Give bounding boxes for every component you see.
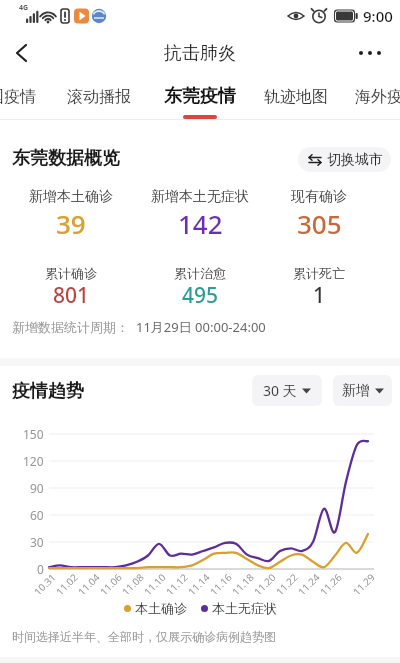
staticText: 新增本土确诊: [29, 188, 113, 204]
button[interactable]: 滚动播报: [64, 82, 134, 112]
staticText: 累计确诊: [45, 265, 97, 281]
staticText: 11.29: [350, 570, 376, 596]
staticText: 本土确诊: [135, 600, 187, 616]
staticText: 142: [178, 206, 223, 234]
button[interactable]: [4, 32, 44, 74]
staticText: 东莞疫情: [164, 85, 236, 108]
staticText: 11.16: [207, 570, 233, 596]
staticText: 本土无症状: [212, 600, 277, 616]
button[interactable]: [350, 32, 394, 74]
staticText: 11.06: [97, 570, 123, 596]
staticText: 4G: [19, 3, 29, 13]
staticText: 9:00: [363, 6, 393, 26]
staticText: 累计治愈: [174, 265, 226, 281]
staticText: 国疫情: [0, 87, 36, 107]
staticText: 时间选择近半年、全部时，仅展示确诊病例趋势图: [12, 629, 276, 644]
staticText: 11.20: [251, 570, 277, 596]
staticText: 抗击肺炎: [164, 42, 236, 65]
button[interactable]: 切换城市: [298, 147, 391, 172]
staticText: 11月29日 00:00-24:00: [136, 318, 266, 335]
staticText: 滚动播报: [67, 87, 131, 107]
button[interactable]: 新增: [333, 375, 392, 406]
staticText: 11.22: [273, 570, 299, 596]
staticText: 120: [23, 453, 44, 469]
staticText: 疫情趋势: [12, 380, 84, 403]
staticText: 39: [56, 206, 86, 234]
staticText: 11.12: [163, 570, 189, 596]
staticText: 495: [182, 281, 219, 303]
staticText: 海外疫情: [355, 87, 400, 107]
button[interactable]: 国疫情: [0, 82, 38, 112]
staticText: 现有确诊: [291, 188, 347, 204]
staticText: 10.31: [31, 570, 57, 596]
staticText: 30 天: [263, 381, 297, 400]
staticText: 305: [297, 206, 342, 234]
staticText: 新增: [342, 382, 370, 400]
button[interactable]: 东莞疫情: [158, 80, 242, 112]
staticText: 0: [37, 561, 44, 577]
staticText: 切换城市: [327, 151, 383, 169]
staticText: 轨迹地图: [264, 87, 328, 107]
button[interactable]: 海外疫情: [355, 82, 400, 112]
staticText: 30: [30, 534, 44, 550]
staticText: 801: [53, 281, 90, 303]
staticText: 东莞数据概览: [12, 147, 120, 170]
staticText: 90: [30, 480, 44, 496]
staticText: 11.08: [119, 570, 145, 596]
staticText: 11.24: [295, 570, 321, 596]
staticText: 60: [30, 507, 44, 523]
staticText: 11.10: [141, 570, 167, 596]
staticText: 150: [23, 426, 44, 442]
staticText: 1: [313, 281, 326, 303]
staticText: 累计死亡: [293, 265, 345, 281]
staticText: 11.18: [229, 570, 255, 596]
staticText: 11.04: [75, 570, 101, 596]
button[interactable]: 30 天: [252, 375, 322, 406]
staticText: 新增本土无症状: [151, 188, 249, 204]
staticText: 11.26: [317, 570, 343, 596]
button[interactable]: 轨迹地图: [260, 82, 332, 112]
staticText: 11.14: [185, 570, 211, 596]
staticText: 11.02: [53, 570, 79, 596]
staticText: 新增数据统计周期：: [12, 319, 129, 335]
